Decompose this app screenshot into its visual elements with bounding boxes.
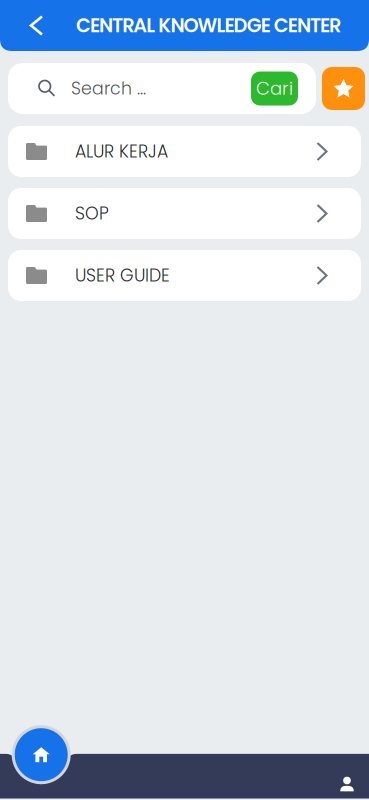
button[interactable]: Favorites (322, 67, 365, 110)
button[interactable]: Home (12, 725, 71, 784)
staticText: ALUR KERJA (75, 139, 168, 164)
staticText: CENTRAL KNOWLEDGE CENTER (76, 12, 341, 39)
staticText: Search ... (71, 76, 146, 101)
button[interactable]: Cari (251, 71, 298, 105)
button[interactable]: Back (14, 0, 59, 51)
button[interactable]: SOP (8, 188, 361, 239)
staticText: USER GUIDE (75, 263, 170, 288)
button[interactable]: ALUR KERJA (8, 126, 361, 177)
button[interactable]: USER GUIDE (8, 250, 361, 301)
staticText: Cari (256, 76, 293, 101)
staticText: SOP (75, 201, 109, 226)
button[interactable]: Profile (325, 767, 369, 800)
